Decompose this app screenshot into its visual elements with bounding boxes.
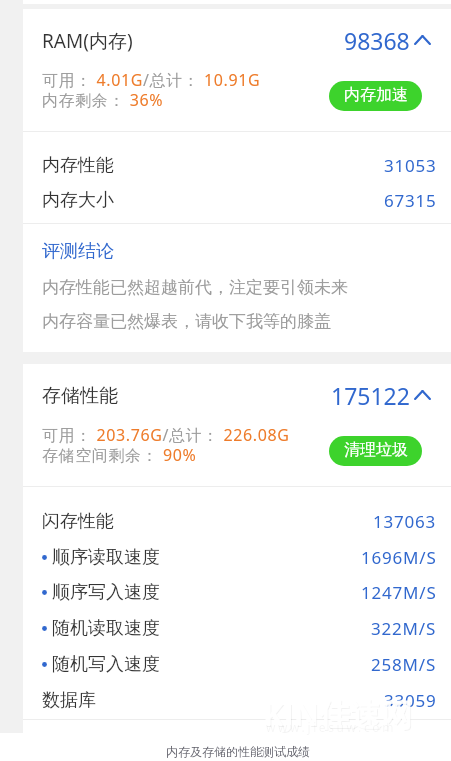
staticText: 可用： 203.76G/总计： 226.08G bbox=[42, 424, 290, 446]
staticText: RAM(内存) bbox=[42, 28, 133, 54]
staticText: 1247M/S bbox=[361, 581, 437, 604]
staticText: 存储性能 bbox=[42, 384, 118, 408]
staticText: KJN佳速网 bbox=[263, 693, 413, 735]
staticText: 清理垃圾 bbox=[344, 440, 408, 460]
staticText: 顺序读取速度 bbox=[52, 546, 160, 569]
staticText: 322M/S bbox=[371, 617, 437, 640]
button[interactable]: 98368 bbox=[344, 25, 431, 56]
staticText: 内存剩余： 36% bbox=[42, 89, 164, 111]
button[interactable]: 闪存性能 bbox=[23, 504, 451, 539]
button[interactable]: 数据库 bbox=[23, 682, 451, 718]
staticText: 175122 bbox=[331, 380, 410, 411]
button[interactable]: 内存性能 bbox=[23, 148, 451, 183]
staticText: 内存加速 bbox=[344, 85, 408, 105]
button[interactable]: 顺序读取速度 bbox=[23, 539, 451, 575]
staticText: 137063 bbox=[373, 510, 437, 533]
staticText: 31053 bbox=[384, 154, 437, 177]
staticText: 258M/S bbox=[371, 653, 437, 676]
button[interactable]: 随机写入速度 bbox=[23, 647, 451, 682]
staticText: 67315 bbox=[384, 189, 437, 212]
staticText: 随机读取速度 bbox=[52, 617, 160, 640]
staticText: 可用： 4.01G/总计： 10.91G bbox=[42, 69, 261, 91]
staticText: 内存大小 bbox=[42, 189, 114, 212]
button[interactable]: 随机读取速度 bbox=[23, 610, 451, 647]
staticText: 内存及存储的性能测试成绩 bbox=[166, 744, 310, 759]
staticText: 内存性能已然超越前代，注定要引领未来 bbox=[42, 277, 348, 298]
staticText: 存储空间剩余： 90% bbox=[42, 444, 197, 466]
button[interactable]: 内存加速 bbox=[329, 81, 422, 111]
button[interactable]: 175122 bbox=[331, 380, 431, 411]
staticText: www.jiesuw.com bbox=[266, 719, 396, 735]
staticText: 评测结论 bbox=[42, 240, 114, 263]
staticText: 数据库 bbox=[42, 689, 96, 712]
staticText: 33059 bbox=[384, 689, 437, 712]
staticText: 1696M/S bbox=[361, 546, 437, 569]
staticText: 98368 bbox=[344, 25, 410, 56]
staticText: 闪存性能 bbox=[42, 510, 114, 533]
button[interactable]: 内存大小 bbox=[23, 183, 451, 218]
staticText: 内存容量已然爆表，请收下我等的膝盖 bbox=[42, 311, 331, 332]
staticText: 顺序写入速度 bbox=[52, 581, 160, 604]
button[interactable]: 顺序写入速度 bbox=[23, 575, 451, 610]
staticText: KJN佳速网 bbox=[264, 694, 414, 736]
staticText: 随机写入速度 bbox=[52, 653, 160, 676]
staticText: 内存性能 bbox=[42, 154, 114, 177]
button[interactable]: 清理垃圾 bbox=[329, 436, 422, 466]
